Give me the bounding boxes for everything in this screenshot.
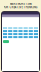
staticText: MAKE MORE TIME bbox=[9, 2, 31, 5]
staticText: FOR CREATIVE THINKING bbox=[3, 5, 37, 9]
